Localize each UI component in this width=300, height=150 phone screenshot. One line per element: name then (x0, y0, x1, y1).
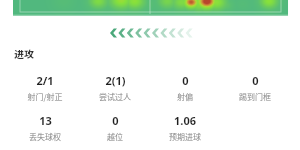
staticText: 2/1 (36, 73, 54, 88)
staticText: 1.06 (174, 113, 196, 128)
staticText: 进攻 (14, 46, 34, 60)
staticText: 0 (182, 73, 189, 88)
staticText: 0 (252, 73, 259, 88)
staticText: 踢到门框 (239, 91, 271, 103)
staticText: 2(1) (105, 73, 126, 88)
staticText: 0 (112, 113, 119, 128)
staticText: 丢失球权 (29, 131, 61, 143)
staticText: 预期进球 (169, 131, 201, 143)
staticText: 13 (39, 113, 52, 128)
staticText: 尝试过人 (99, 91, 131, 103)
staticText: 越位 (107, 131, 123, 143)
staticText: 射偏 (177, 91, 193, 103)
staticText: 射门/射正 (27, 91, 63, 103)
